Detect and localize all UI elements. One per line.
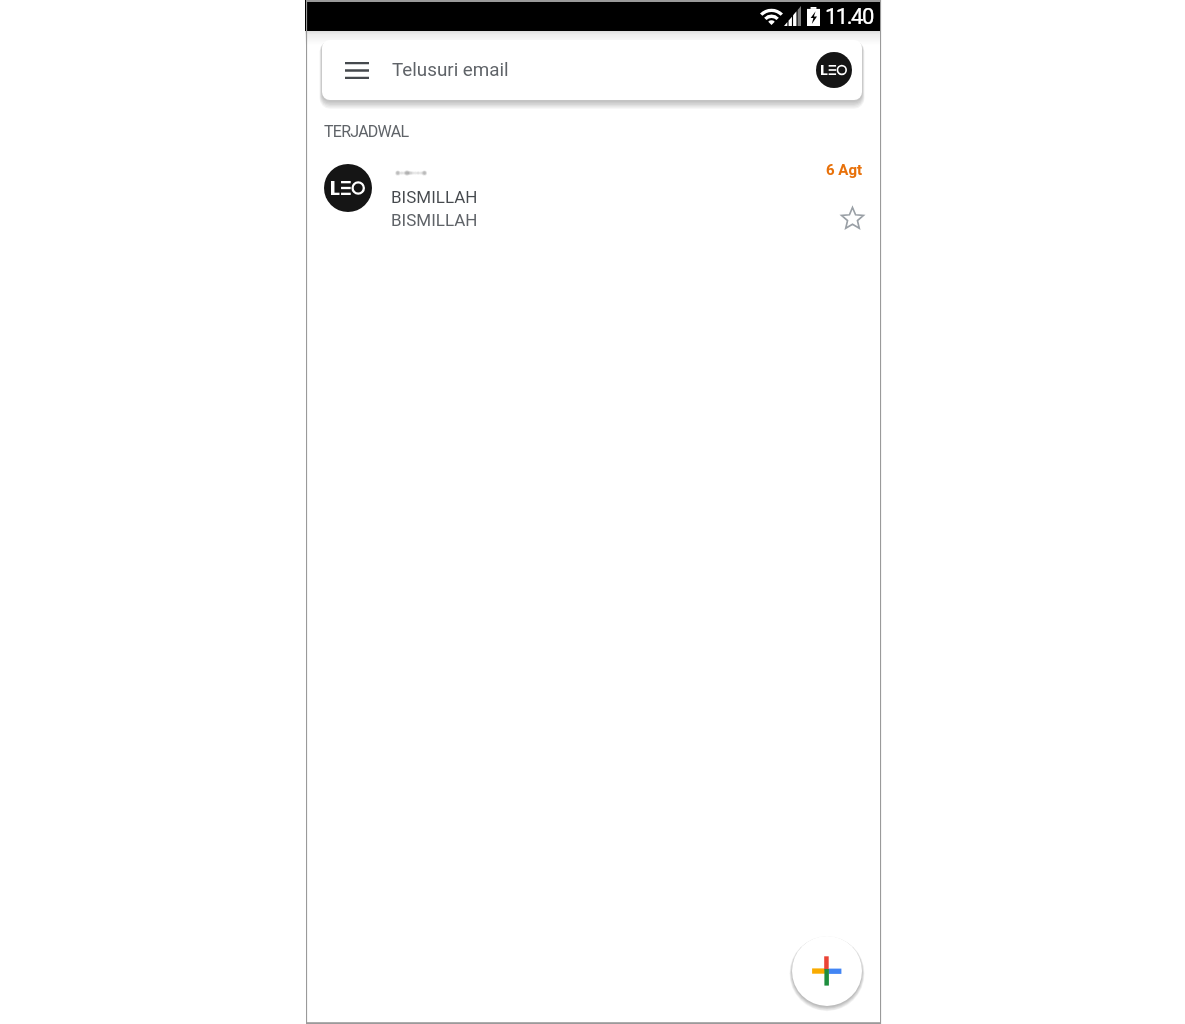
staticText: 11.40 — [825, 4, 873, 30]
button[interactable]: Account — [816, 52, 852, 88]
button[interactable]: Account — [305, 158, 881, 248]
button[interactable]: Account — [324, 164, 372, 212]
staticText: BISMILLAH — [391, 187, 478, 207]
button[interactable]: Open navigation drawer — [322, 40, 862, 100]
staticText: BISMILLAH — [391, 210, 478, 230]
button[interactable]: Compose — [792, 936, 862, 1006]
button[interactable]: Star — [836, 202, 868, 234]
staticText: 6 Agt — [826, 161, 863, 179]
button[interactable]: Open navigation drawer — [337, 50, 377, 90]
staticText: TERJADWAL — [324, 122, 409, 141]
staticText: Telusuri email — [392, 59, 509, 81]
